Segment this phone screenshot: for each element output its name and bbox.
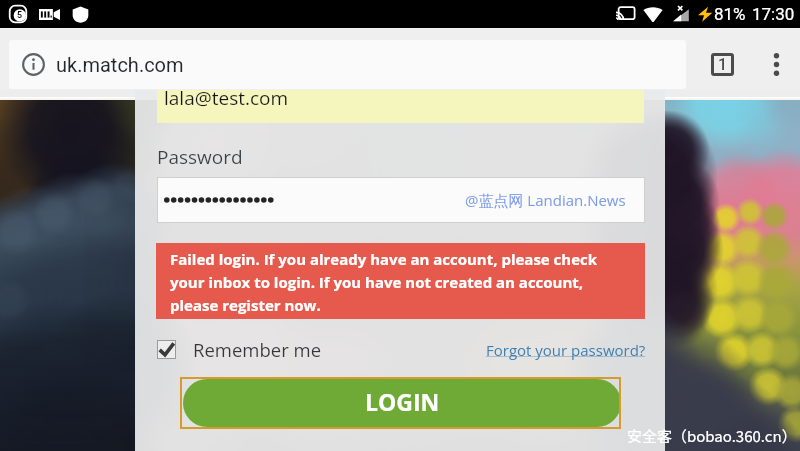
button[interactable]: Forgot your password? — [486, 340, 646, 360]
staticText: 1 — [718, 55, 728, 74]
other: Cast — [615, 4, 635, 24]
button[interactable]: LOGIN — [180, 377, 621, 429]
staticText: 17:30 — [752, 4, 795, 24]
staticText: uk.match.com — [56, 53, 184, 76]
button[interactable]: More options — [755, 43, 797, 85]
staticText: Password — [157, 144, 243, 170]
button[interactable]: Remember me — [157, 337, 322, 362]
staticText: lala@test.com — [164, 90, 289, 111]
staticText: Remember me — [193, 337, 322, 362]
staticText: 安全客（bobao.360.cn） — [627, 425, 797, 447]
button[interactable]: lala@test.com — [157, 90, 644, 123]
button[interactable]: uk.match.com — [9, 40, 686, 89]
staticText: 81% — [714, 4, 746, 24]
staticText: Failed login. If you already have an acc… — [170, 249, 612, 315]
button[interactable]: @蓝点网 Landian.News — [157, 177, 645, 223]
staticText: 5 — [17, 10, 23, 21]
staticText: @蓝点网 Landian.News — [465, 190, 626, 210]
button[interactable]: Tabs — [701, 43, 743, 85]
staticText: LOGIN — [365, 386, 440, 417]
